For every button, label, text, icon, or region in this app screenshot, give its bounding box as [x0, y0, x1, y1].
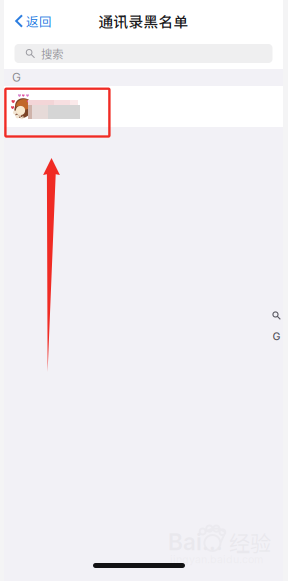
- staticText: 经验: [229, 527, 271, 557]
- staticText: Baidu: [168, 528, 228, 556]
- button[interactable]: Search index: [272, 311, 281, 320]
- staticText: jingyan.baidu.com: [170, 553, 263, 566]
- staticText: G: [272, 330, 280, 343]
- staticText: 搜索: [41, 45, 63, 62]
- button[interactable]: G: [272, 330, 280, 343]
- staticText: 返回: [26, 12, 52, 30]
- button[interactable]: 搜索: [14, 44, 272, 63]
- staticText: 通讯录黑名单: [98, 10, 188, 32]
- staticText: G: [12, 70, 21, 85]
- button[interactable]: [4, 86, 283, 127]
- button[interactable]: 返回: [4, 0, 62, 42]
